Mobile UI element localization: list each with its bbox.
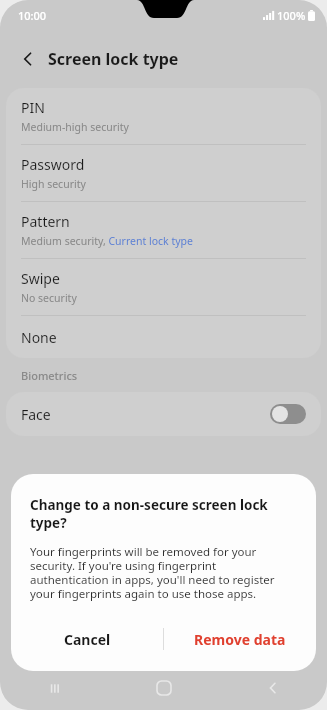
staticText: Change to a non-secure screen lock type? [30,496,297,532]
staticText: Face [21,405,51,424]
staticText: None [21,328,57,347]
button[interactable]: Pattern [6,202,321,258]
button[interactable]: Home [109,666,218,710]
button[interactable]: Face [6,392,321,436]
staticText: Cancel [64,630,111,649]
button[interactable]: Back [12,43,44,75]
button[interactable]: Swipe [6,259,321,315]
button[interactable]: Face unlock toggle [270,404,306,424]
button[interactable]: Back [218,666,327,710]
staticText: Screen lock type [48,48,179,70]
button[interactable]: Password [6,145,321,201]
button[interactable]: Recent apps [0,666,109,710]
staticText: Biometrics [21,368,78,383]
staticText: Remove data [194,630,286,649]
staticText: 10:00 [18,8,47,23]
staticText: Your fingerprints will be removed for yo… [30,544,297,601]
staticText: Swipe [21,269,60,288]
staticText: Pattern [21,212,70,231]
staticText: Medium-high security [21,120,129,134]
staticText: No security [21,291,77,305]
button[interactable]: Remove data [164,617,316,661]
staticText: Medium security, Current lock type [21,234,193,248]
button[interactable]: None [6,316,321,358]
staticText: PIN [21,98,45,117]
button[interactable]: PIN [6,88,321,144]
staticText: Password [21,155,85,174]
button[interactable]: Cancel [11,617,163,661]
staticText: 100% [277,8,306,23]
staticText: High security [21,177,86,191]
